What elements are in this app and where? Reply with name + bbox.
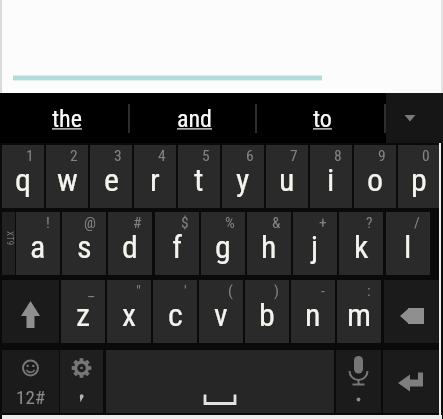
button[interactable] — [336, 350, 381, 413]
button[interactable] — [386, 93, 443, 143]
button[interactable]: p — [398, 145, 440, 208]
staticText: n — [305, 296, 321, 334]
button[interactable]: g — [201, 212, 245, 275]
button[interactable]: n — [291, 280, 335, 343]
button[interactable]: and — [129, 93, 256, 143]
button[interactable]: f — [155, 212, 199, 275]
button[interactable]: w — [46, 145, 88, 208]
staticText: ? — [366, 214, 373, 232]
staticText: o — [367, 161, 384, 199]
staticText: % — [225, 214, 235, 232]
staticText: 9 — [378, 147, 386, 165]
staticText: e — [104, 161, 119, 199]
staticText: g — [215, 228, 231, 266]
staticText: w — [57, 161, 78, 199]
staticText: 2 — [70, 147, 78, 165]
button[interactable]: i — [310, 145, 352, 208]
staticText: 7 — [290, 147, 298, 165]
staticText: 1 — [26, 147, 34, 165]
button[interactable] — [60, 350, 103, 413]
staticText: & — [272, 214, 281, 232]
button[interactable] — [0, 0, 443, 93]
staticText: m — [347, 296, 372, 334]
staticText: b — [259, 296, 275, 334]
staticText: 3 — [114, 147, 122, 165]
staticText: h — [261, 228, 277, 266]
staticText: p — [411, 161, 427, 199]
staticText: / — [414, 214, 420, 232]
staticText: the — [52, 105, 82, 133]
staticText: " — [136, 282, 141, 300]
staticText: j — [311, 228, 319, 266]
staticText: y — [236, 161, 250, 199]
staticText: c — [168, 296, 183, 334]
staticText: and — [177, 105, 213, 133]
button[interactable]: r — [134, 145, 176, 208]
button[interactable]: the — [0, 93, 129, 143]
staticText: 6 — [246, 147, 254, 165]
staticText: + — [319, 214, 327, 232]
button[interactable]: j — [293, 212, 337, 275]
button[interactable]: h — [247, 212, 291, 275]
button[interactable]: m — [337, 280, 381, 343]
staticText: 8 — [334, 147, 342, 165]
button[interactable]: y — [222, 145, 264, 208]
staticText: r — [150, 161, 160, 199]
staticText: to — [313, 105, 332, 133]
staticText: 4 — [158, 147, 166, 165]
button[interactable]: d — [108, 212, 152, 275]
button[interactable]: o — [354, 145, 396, 208]
button[interactable]: to — [256, 93, 385, 143]
staticText: # — [133, 214, 142, 232]
button[interactable]: u — [266, 145, 308, 208]
button[interactable]: q — [2, 145, 44, 208]
staticText: v — [214, 296, 228, 334]
button[interactable]: v — [199, 280, 243, 343]
staticText: _ — [88, 282, 95, 300]
staticText: a — [30, 228, 46, 266]
staticText: s — [77, 228, 92, 266]
staticText: 0 — [422, 147, 430, 165]
button[interactable]: 12# — [2, 350, 59, 413]
button[interactable] — [383, 350, 439, 413]
staticText: u — [279, 161, 295, 199]
button[interactable]: l — [386, 212, 430, 275]
button[interactable] — [2, 280, 59, 343]
staticText: ) — [274, 282, 279, 300]
button[interactable]: k — [339, 212, 383, 275]
staticText: t — [194, 161, 204, 199]
staticText: 12# — [16, 386, 46, 408]
button[interactable]: z — [61, 280, 105, 343]
staticText: : — [367, 282, 371, 300]
staticText: k — [354, 228, 369, 266]
staticText: @ — [84, 214, 96, 232]
staticText: x — [122, 296, 137, 334]
staticText: 5 — [202, 147, 210, 165]
button[interactable]: e — [90, 145, 132, 208]
button[interactable] — [106, 350, 334, 413]
staticText: d — [122, 228, 138, 266]
button[interactable]: b — [245, 280, 289, 343]
button[interactable]: s — [62, 212, 106, 275]
staticText: f — [172, 228, 183, 266]
staticText: XT9 — [3, 231, 15, 257]
staticText: i — [327, 161, 335, 199]
button[interactable]: a — [16, 212, 60, 275]
staticText: q — [15, 161, 32, 199]
button[interactable]: x — [107, 280, 151, 343]
staticText: ( — [228, 282, 233, 300]
staticText: z — [76, 296, 91, 334]
staticText: ! — [46, 214, 50, 232]
button[interactable] — [384, 280, 440, 343]
staticText: $ — [181, 214, 189, 232]
staticText: l — [404, 228, 412, 266]
button[interactable]: XT9 — [2, 212, 15, 275]
button[interactable]: t — [178, 145, 220, 208]
staticText: - — [321, 282, 325, 300]
staticText: ' — [184, 282, 187, 300]
button[interactable]: c — [153, 280, 197, 343]
